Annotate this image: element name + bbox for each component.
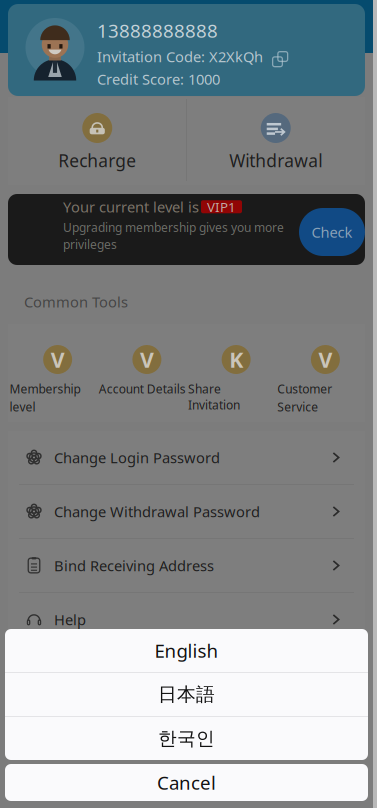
staticText: Account Details (99, 381, 186, 397)
staticText: V (140, 345, 154, 374)
staticText: Recharge (58, 149, 136, 172)
staticText: Withdrawal (229, 149, 322, 172)
staticText: Cancel (157, 770, 216, 795)
staticText: Membership (9, 381, 80, 397)
staticText: 한국인 (158, 727, 215, 750)
staticText: English (154, 638, 218, 663)
staticText: privileges (63, 236, 117, 252)
staticText: K (229, 345, 243, 374)
staticText: level (9, 399, 35, 415)
staticText: V (51, 345, 65, 374)
staticText: Check (311, 222, 352, 242)
staticText: 13888888888 (97, 18, 218, 43)
button[interactable]: Check (299, 208, 365, 256)
staticText: Customer (277, 381, 332, 397)
button[interactable]: 日本語 (5, 673, 368, 716)
staticText: Bind Receiving Address (54, 556, 214, 575)
button[interactable]: Change Withdrawal Password (8, 485, 365, 538)
button[interactable]: V (8, 324, 97, 422)
button[interactable]: K (186, 324, 276, 422)
staticText: Change Withdrawal Password (54, 502, 260, 521)
staticText: Upgrading membership gives you more (63, 219, 284, 235)
button[interactable]: Change Login Password (8, 431, 365, 484)
staticText: Help (54, 610, 86, 629)
button[interactable]: 한국인 (5, 717, 368, 760)
button[interactable]: Help (8, 593, 365, 646)
staticText: 日本語 (158, 683, 215, 706)
staticText: Your current level is (63, 197, 199, 216)
button[interactable]: Withdrawal (186, 97, 365, 185)
button[interactable]: V (276, 324, 365, 422)
button[interactable]: English (5, 629, 368, 672)
button[interactable]: Bind Receiving Address (8, 539, 365, 592)
button[interactable]: Cancel (5, 764, 368, 801)
staticText: VIP1 (207, 198, 236, 216)
staticText: Share Invitation (188, 381, 240, 413)
staticText: V (318, 345, 332, 374)
button[interactable]: Recharge (8, 97, 186, 185)
staticText: Service (277, 399, 318, 415)
button[interactable]: Copy invitation code (270, 49, 285, 64)
staticText: Credit Score: 1000 (97, 69, 220, 89)
staticText: Invitation Code: X2XkQh (97, 47, 263, 66)
staticText: Change Login Password (54, 448, 220, 467)
staticText: Common Tools (24, 292, 128, 311)
button[interactable]: V (97, 324, 186, 422)
